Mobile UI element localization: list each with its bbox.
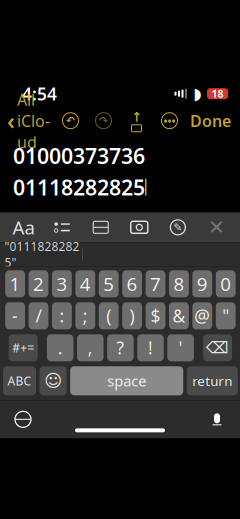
button[interactable]: #+=	[9, 334, 38, 361]
button[interactable]: Camera	[124, 213, 154, 241]
button[interactable]: :	[52, 302, 72, 329]
button[interactable]: Share	[128, 112, 144, 130]
button[interactable]: Switch keyboard	[8, 404, 38, 434]
button[interactable]: 0	[216, 270, 236, 297]
button[interactable]: '	[167, 334, 194, 361]
button[interactable]: ;	[75, 302, 95, 329]
staticText: -	[12, 304, 18, 327]
button[interactable]: )	[122, 302, 142, 329]
button[interactable]: More	[161, 113, 177, 129]
staticText: #+=	[12, 340, 34, 356]
staticText: ?	[116, 336, 124, 359]
button[interactable]: ‹	[0, 84, 50, 157]
staticText: ,	[88, 336, 93, 359]
button[interactable]: ,	[77, 334, 104, 361]
button[interactable]: Delete	[203, 334, 232, 361]
staticText: 18	[211, 87, 223, 101]
button[interactable]: Dictation	[202, 404, 232, 434]
staticText: 6	[127, 271, 138, 296]
button[interactable]: space	[70, 366, 183, 395]
button[interactable]: (	[99, 302, 119, 329]
staticText: "	[222, 304, 229, 327]
button[interactable]: return	[187, 366, 238, 395]
button[interactable]: 1	[5, 270, 25, 297]
button[interactable]: 9	[192, 270, 212, 297]
staticText: •••	[163, 114, 175, 128]
button[interactable]: Checklist	[47, 213, 77, 241]
staticText: ◗	[193, 85, 201, 103]
staticText: :	[59, 304, 64, 327]
button[interactable]: ABC	[3, 366, 36, 395]
button[interactable]: 3	[52, 270, 72, 297]
staticText: ✎	[173, 221, 182, 233]
button[interactable]: 4	[75, 270, 95, 297]
staticText: )	[130, 304, 135, 327]
button[interactable]: Emoji	[40, 366, 67, 395]
staticText: Done	[190, 110, 231, 131]
button[interactable]: Undo	[62, 113, 78, 129]
button[interactable]: Done	[190, 105, 240, 136]
staticText: 0	[220, 271, 231, 296]
staticText: 01118282825	[13, 173, 145, 201]
staticText: (	[106, 304, 111, 327]
button[interactable]: @	[192, 302, 212, 329]
staticText: ;	[83, 304, 88, 327]
button[interactable]: 5	[99, 270, 119, 297]
staticText: 3	[56, 271, 67, 296]
staticText: 1	[10, 271, 21, 296]
staticText: ABC	[7, 373, 31, 389]
button[interactable]: -	[5, 302, 25, 329]
staticText: '	[179, 336, 183, 359]
button[interactable]: $	[146, 302, 165, 329]
button[interactable]: 6	[122, 270, 142, 297]
button[interactable]: Format	[9, 213, 39, 241]
staticText: ↷	[99, 115, 108, 127]
staticText: ⌫	[206, 339, 229, 357]
staticText: 4:54	[22, 82, 57, 105]
staticText: 01000373736	[13, 142, 145, 170]
button[interactable]: Hide keyboard	[201, 213, 231, 241]
staticText: /	[35, 304, 41, 327]
staticText: ✕	[208, 216, 225, 239]
button[interactable]: 8	[169, 270, 189, 297]
staticText: Aa	[13, 215, 35, 240]
button[interactable]: .	[47, 334, 73, 361]
button[interactable]: &	[169, 302, 189, 329]
button[interactable]: !	[137, 334, 164, 361]
staticText: ‹	[7, 106, 15, 136]
button[interactable]: 7	[146, 270, 165, 297]
button[interactable]: Redo	[95, 113, 111, 129]
staticText: ☺	[44, 371, 62, 391]
staticText: All iCloud	[17, 89, 50, 152]
staticText: ↶	[66, 115, 75, 127]
staticText: .	[58, 336, 63, 359]
button[interactable]: "	[216, 302, 236, 329]
staticText: ↑	[131, 110, 142, 125]
staticText: 7	[150, 271, 161, 296]
staticText: 2	[33, 271, 44, 296]
staticText: space	[107, 371, 146, 391]
button[interactable]: 2	[29, 270, 48, 297]
button[interactable]: /	[29, 302, 48, 329]
staticText: 5	[103, 271, 114, 296]
button[interactable]: Markup	[163, 213, 193, 241]
staticText: return	[192, 372, 232, 390]
button[interactable]: "01118282825"	[2, 243, 82, 265]
button[interactable]: Table	[86, 213, 116, 241]
staticText: 4	[80, 271, 91, 296]
staticText: "01118282825"	[4, 238, 79, 270]
button[interactable]: ?	[107, 334, 134, 361]
staticText: &	[172, 304, 185, 327]
staticText: $	[150, 304, 160, 327]
staticText: 8	[173, 271, 184, 296]
staticText: 9	[197, 271, 208, 296]
staticText: !	[148, 336, 153, 359]
staticText: @	[194, 304, 210, 327]
